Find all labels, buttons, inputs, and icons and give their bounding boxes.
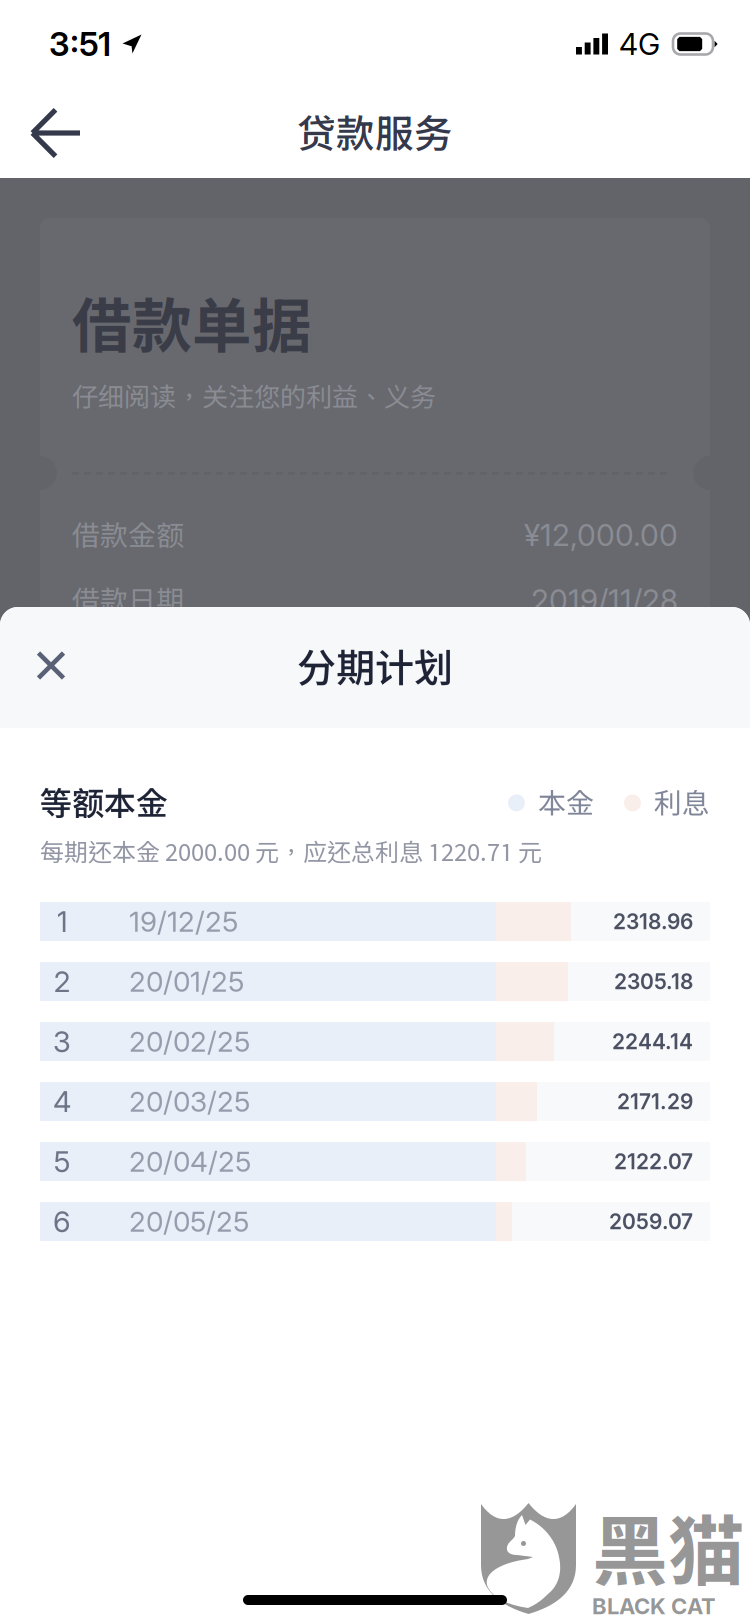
button[interactable]: Close xyxy=(0,627,95,707)
staticText: 4 xyxy=(53,1084,71,1119)
staticText: 贷款服务 xyxy=(297,110,453,156)
staticText: 2122.07 xyxy=(614,1149,693,1174)
staticText: 20/05/25 xyxy=(129,1205,249,1238)
staticText: 3:51 xyxy=(49,24,111,64)
staticText: 2019/11/28 xyxy=(531,582,678,618)
staticText: 每期还本金 2000.00 元，应还总利息 1220.71 元 xyxy=(40,838,542,866)
staticText: 6 xyxy=(53,1204,71,1239)
staticText: 1 xyxy=(56,904,67,939)
staticText: 借款单据 xyxy=(72,290,312,360)
staticText: 2305.18 xyxy=(614,969,693,994)
staticText: 利息 xyxy=(654,786,710,819)
button[interactable]: Back xyxy=(0,93,101,173)
staticText: 借款金额 xyxy=(72,518,184,551)
staticText: 等额本金 xyxy=(40,784,168,822)
staticText: 19/12/25 xyxy=(129,905,238,938)
staticText: 2244.14 xyxy=(612,1029,693,1054)
staticText: 4G xyxy=(619,26,660,62)
staticText: 2171.29 xyxy=(617,1089,693,1114)
staticText: 仔细阅读，关注您的利益、义务 xyxy=(72,381,436,412)
staticText: 分期计划 xyxy=(297,644,453,690)
staticText: 本金 xyxy=(538,786,594,819)
staticText: 黑猫 xyxy=(592,1505,744,1595)
staticText: 20/03/25 xyxy=(129,1085,250,1118)
staticText: 3 xyxy=(53,1024,71,1059)
staticText: 借款日期 xyxy=(72,584,184,617)
staticText: 20/04/25 xyxy=(129,1145,251,1178)
staticText: 20/01/25 xyxy=(129,965,244,998)
staticText: BLACK CAT xyxy=(592,1593,716,1620)
staticText: 2318.96 xyxy=(613,909,693,934)
staticText: 5 xyxy=(53,1144,70,1179)
staticText: 2 xyxy=(53,964,70,999)
staticText: ¥12,000.00 xyxy=(524,517,678,553)
staticText: 2059.07 xyxy=(609,1209,693,1234)
staticText: 20/02/25 xyxy=(129,1025,250,1058)
